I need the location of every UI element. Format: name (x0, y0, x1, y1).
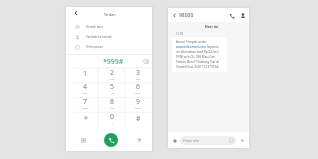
staticText: + (112, 121, 114, 124)
staticText: 2 (110, 68, 115, 78)
staticText: Pesan teks (183, 139, 200, 143)
button[interactable]: 9 (125, 97, 151, 112)
button[interactable]: Pesan teks (180, 136, 236, 145)
button[interactable]: Tambah ke kontak (66, 32, 152, 42)
button[interactable]: Emoji (229, 138, 234, 143)
staticText: 4 (83, 82, 88, 92)
button[interactable]: # (125, 112, 151, 127)
staticText: WXYZ (135, 106, 142, 109)
staticText: Tarikan (104, 12, 116, 17)
staticText: 98000 (179, 12, 194, 19)
button[interactable]: 3 (125, 68, 151, 82)
button[interactable]: Back (169, 10, 180, 21)
staticText: 5 (110, 82, 115, 92)
button[interactable]: 6 (125, 82, 151, 97)
button[interactable]: * (72, 112, 99, 127)
button[interactable]: Back (70, 7, 82, 19)
staticText: PQRS (82, 106, 89, 109)
button[interactable]: Kirim pesan (66, 42, 152, 52)
staticText: Kirim pesan (86, 45, 103, 49)
staticText: 8 (110, 97, 115, 107)
staticText: *999# (103, 57, 124, 67)
button[interactable]: Add attachment (169, 135, 180, 146)
button[interactable]: Call (226, 10, 237, 21)
staticText: TUV (110, 106, 115, 109)
staticText: 0 (110, 112, 115, 122)
staticText: 7 (83, 97, 88, 107)
staticText: ABC (110, 77, 115, 80)
staticText: DEF (136, 77, 141, 80)
button[interactable]: Hide keypad (132, 133, 146, 147)
button[interactable]: Contact details (237, 10, 248, 21)
button[interactable]: Backspace (138, 55, 152, 68)
staticText: Asmoi Simpati anda : www.telkomsel.com l… (176, 40, 223, 69)
staticText: 1 (83, 69, 88, 79)
staticText: 12:04 (176, 32, 184, 36)
staticText: 6 (136, 82, 141, 92)
staticText: GHI (83, 91, 88, 94)
button[interactable]: 0 (99, 112, 125, 127)
staticText: 9 (136, 97, 141, 107)
staticText: Hari ini (171, 24, 252, 29)
staticText: * (84, 114, 88, 124)
button[interactable]: Call (104, 133, 118, 147)
button[interactable]: 8 (99, 97, 125, 112)
staticText: Kontak baru (86, 25, 104, 29)
staticText: 3 (136, 68, 141, 78)
button[interactable]: Kontak baru (66, 22, 152, 32)
button[interactable]: 4 (72, 82, 99, 97)
button[interactable]: Send (238, 136, 247, 145)
button[interactable]: 5 (99, 82, 125, 97)
staticText: # (136, 114, 141, 124)
button[interactable]: Keypad (76, 133, 90, 147)
button[interactable]: 1 (72, 68, 99, 82)
button[interactable]: 2 (99, 68, 125, 82)
button[interactable]: 7 (72, 97, 99, 112)
staticText: Tambah ke kontak (86, 35, 112, 39)
staticText: MNO (135, 91, 141, 94)
staticText: JKL (111, 91, 115, 94)
